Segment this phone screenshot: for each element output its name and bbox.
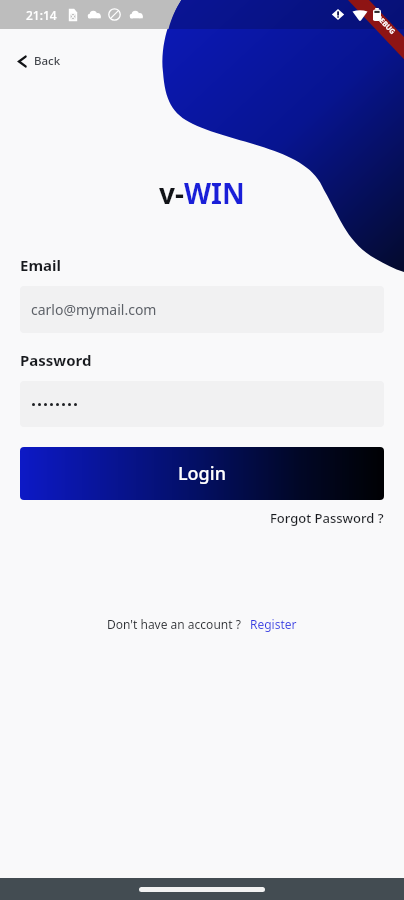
staticText: Password — [20, 350, 92, 370]
staticText: Don't have an account ? — [107, 616, 241, 632]
button[interactable]: Login — [20, 447, 384, 500]
staticText: Register — [250, 616, 297, 632]
staticText: Forgot Password ? — [270, 509, 384, 527]
staticText: v-WIN — [159, 174, 245, 212]
button[interactable]: Register — [250, 616, 297, 632]
button[interactable] — [20, 381, 384, 427]
button[interactable]: carlo@mymail.com — [20, 286, 384, 333]
staticText: Login — [178, 461, 226, 486]
staticText: carlo@mymail.com — [31, 300, 157, 319]
button[interactable]: Back — [18, 41, 61, 81]
staticText: Back — [34, 53, 61, 69]
button[interactable]: Forgot Password ? — [270, 509, 384, 527]
staticText: Email — [20, 255, 61, 275]
other: Back — [18, 56, 26, 67]
staticText: 21:14 — [26, 7, 57, 23]
staticText: DEBUG — [373, 12, 398, 37]
